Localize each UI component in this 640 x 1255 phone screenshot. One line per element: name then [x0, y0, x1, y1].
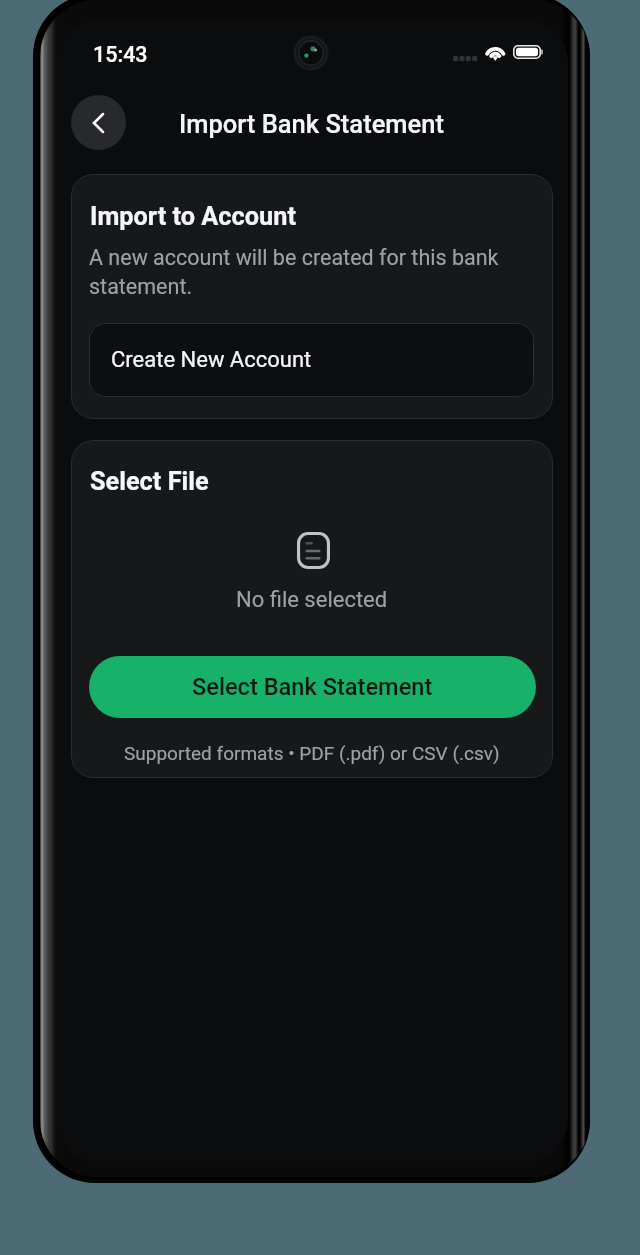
button[interactable]: Create New Account [89, 323, 534, 397]
staticText: Import Bank Statement [179, 109, 444, 139]
staticText: No file selected [236, 587, 388, 613]
staticText: A new account will be created for this b… [89, 245, 513, 299]
button[interactable]: Select Bank Statement [89, 656, 536, 718]
staticText: Supported formats • PDF (.pdf) or CSV (.… [124, 742, 500, 764]
staticText: Select Bank Statement [192, 673, 433, 701]
staticText: Create New Account [111, 347, 312, 373]
staticText: Select File [90, 467, 209, 497]
button[interactable]: Back [71, 95, 126, 150]
staticText: 15:43 [93, 42, 148, 67]
staticText: Import to Account [90, 202, 296, 232]
